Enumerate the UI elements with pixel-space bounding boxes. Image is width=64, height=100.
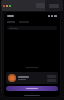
button[interactable]: Profile avatar	[6, 72, 58, 84]
button[interactable]	[1, 0, 47, 11]
button[interactable]: Continue	[6, 86, 58, 91]
button[interactable]	[7, 26, 57, 30]
button[interactable]: Profile avatar	[8, 74, 16, 82]
button[interactable]	[45, 0, 63, 11]
